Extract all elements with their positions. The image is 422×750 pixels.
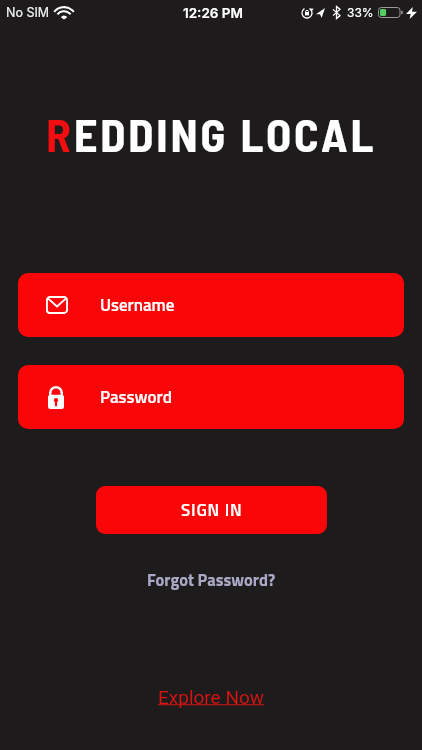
- staticText: No SIM: [6, 5, 50, 20]
- staticText: REDDING LOCAL: [46, 106, 377, 161]
- staticText: 33%: [347, 5, 374, 20]
- staticText: SIGN IN: [181, 497, 243, 523]
- staticText: Password: [100, 384, 172, 410]
- button[interactable]: Username: [18, 273, 404, 337]
- button[interactable]: Explore Now: [158, 686, 265, 708]
- button[interactable]: Password: [18, 365, 404, 429]
- staticText: Username: [100, 292, 175, 318]
- staticText: 12:26 PM: [183, 5, 244, 21]
- button[interactable]: Forgot Password?: [147, 567, 276, 592]
- button[interactable]: SIGN IN: [96, 486, 327, 534]
